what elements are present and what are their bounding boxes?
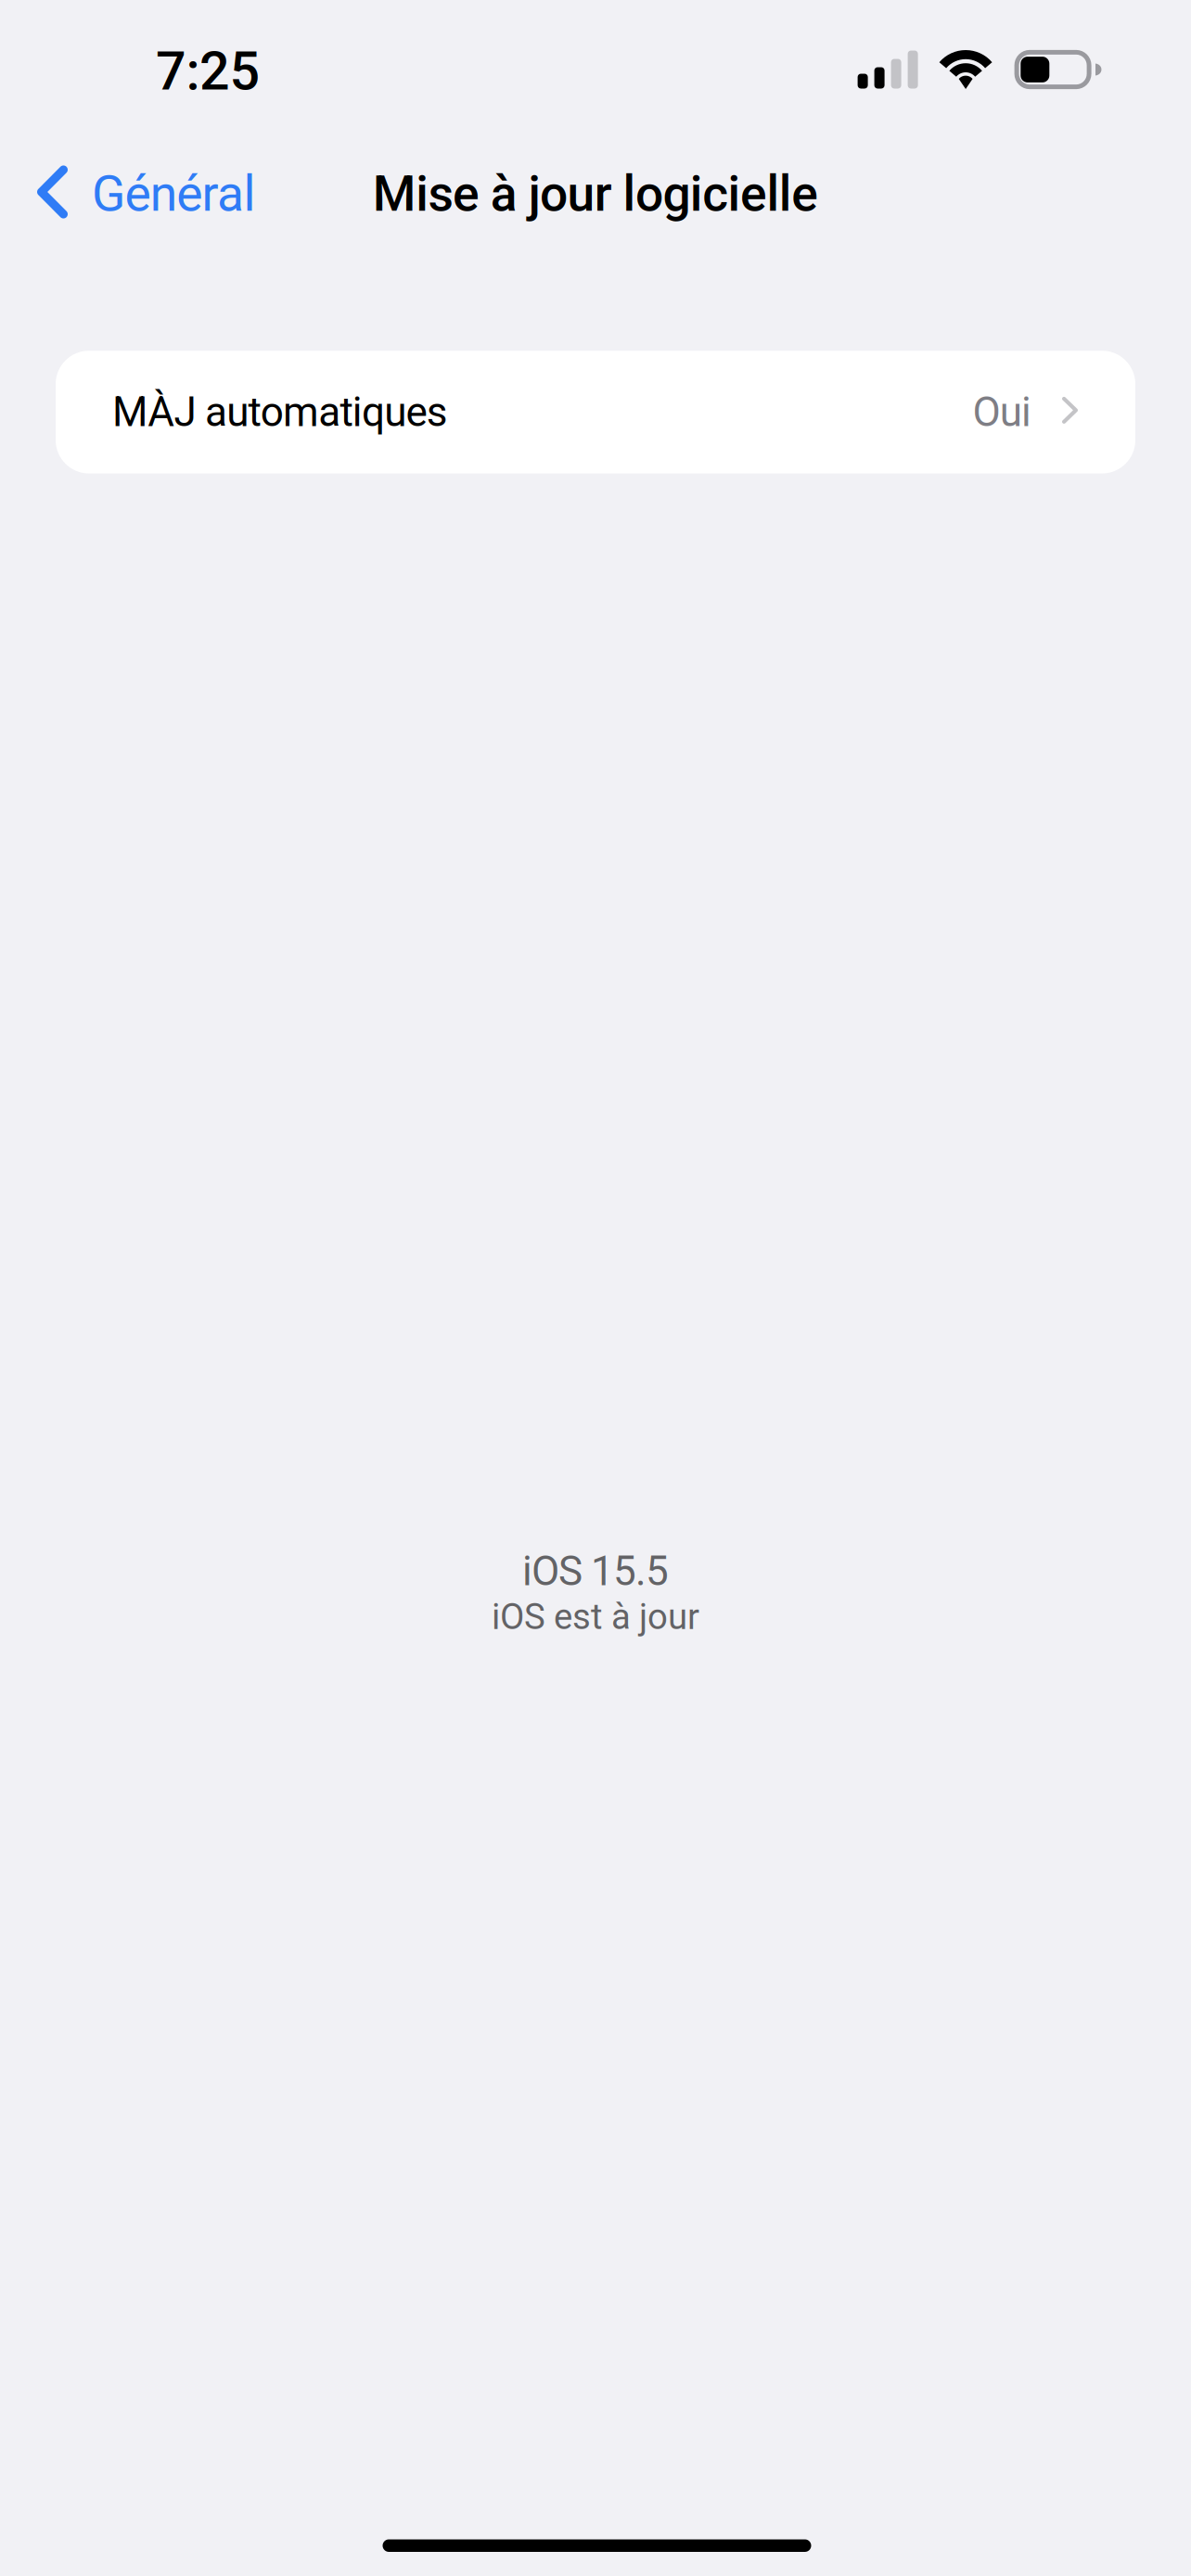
staticText: iOS 15.5 xyxy=(522,1547,669,1595)
staticText: iOS est à jour xyxy=(492,1596,699,1638)
button[interactable]: MÀJ automatiques xyxy=(56,351,1135,473)
staticText: 7:25 xyxy=(156,40,260,103)
button[interactable]: Général xyxy=(0,133,274,255)
staticText: Mise à jour logicielle xyxy=(373,165,818,223)
staticText: MÀJ automatiques xyxy=(112,388,448,436)
staticText: Oui xyxy=(973,388,1031,436)
staticText: Général xyxy=(92,165,255,223)
